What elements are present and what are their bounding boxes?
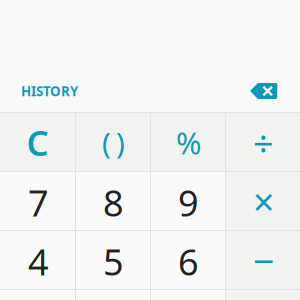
staticText: ×: [253, 177, 274, 226]
staticText: 7: [28, 179, 49, 226]
staticText: C: [26, 119, 48, 165]
staticText: HISTORY: [21, 82, 78, 100]
staticText: −: [253, 236, 274, 285]
staticText: 5: [103, 238, 124, 285]
button[interactable]: 5: [75, 231, 150, 290]
staticText: ( ): [102, 123, 125, 162]
staticText: 9: [178, 179, 199, 226]
button[interactable]: %: [150, 113, 225, 172]
button[interactable]: ×: [225, 172, 300, 231]
button[interactable]: 4: [0, 231, 75, 290]
button[interactable]: Delete: [245, 79, 283, 103]
button[interactable]: 8: [75, 172, 150, 231]
staticText: 4: [28, 238, 49, 285]
button[interactable]: ÷: [225, 113, 300, 172]
staticText: 8: [103, 179, 124, 226]
button[interactable]: −: [225, 231, 300, 290]
button[interactable]: ( ): [75, 113, 150, 172]
button[interactable]: 9: [150, 172, 225, 231]
button[interactable]: HISTORY: [21, 80, 81, 102]
staticText: %: [176, 122, 201, 163]
button[interactable]: 6: [150, 231, 225, 290]
staticText: 6: [178, 238, 199, 285]
button[interactable]: 7: [0, 172, 75, 231]
button[interactable]: C: [0, 113, 75, 172]
staticText: ÷: [253, 119, 274, 166]
